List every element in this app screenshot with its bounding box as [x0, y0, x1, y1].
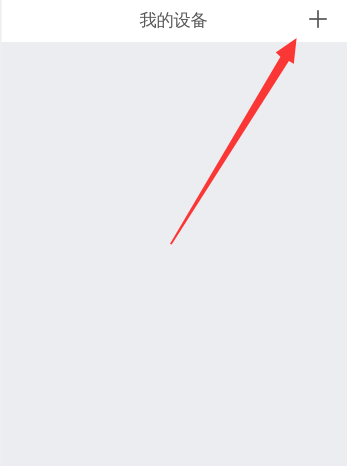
button[interactable]: Add device [298, 0, 338, 38]
staticText: 我的设备 [139, 10, 207, 31]
